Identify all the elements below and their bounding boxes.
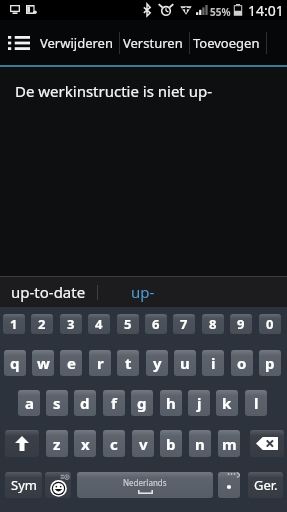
- staticText: x: [81, 434, 90, 454]
- staticText: z: [53, 434, 61, 454]
- button[interactable]: n: [189, 430, 211, 457]
- button[interactable]: u: [174, 350, 196, 376]
- staticText: 0: [266, 315, 274, 333]
- staticText: v: [139, 434, 148, 454]
- staticText: i: [211, 353, 216, 373]
- staticText: e: [67, 353, 76, 373]
- staticText: 1: [10, 315, 18, 333]
- button[interactable]: Backspace: [250, 430, 284, 457]
- button[interactable]: q: [4, 350, 26, 376]
- button[interactable]: 1: [3, 314, 25, 334]
- button[interactable]: c: [103, 430, 125, 457]
- staticText: b: [166, 434, 176, 454]
- staticText: 55%: [210, 5, 231, 19]
- staticText: 14:01: [248, 1, 284, 20]
- button[interactable]: 0: [259, 314, 281, 334]
- staticText: m: [222, 434, 237, 454]
- button[interactable]: d: [74, 390, 96, 416]
- button[interactable]: Versturen: [120, 20, 189, 65]
- button[interactable]: m: [218, 430, 240, 457]
- staticText: r: [97, 353, 104, 373]
- staticText: 9: [237, 315, 245, 333]
- button[interactable]: k: [216, 390, 238, 416]
- button[interactable]: h: [160, 390, 182, 416]
- staticText: c: [110, 434, 118, 454]
- button[interactable]: Space: [77, 472, 213, 498]
- staticText: w: [37, 353, 50, 373]
- button[interactable]: Emoji: [45, 472, 71, 498]
- staticText: Toevoegen: [193, 34, 260, 52]
- button[interactable]: 5: [117, 314, 139, 334]
- staticText: Verwijderen: [40, 34, 113, 52]
- staticText: 7: [180, 315, 188, 333]
- staticText: l: [254, 393, 259, 413]
- staticText: 5: [124, 315, 132, 333]
- staticText: up-: [131, 282, 155, 302]
- button[interactable]: o: [231, 350, 253, 376]
- button[interactable]: y: [146, 350, 168, 376]
- button[interactable]: x: [74, 430, 96, 457]
- button[interactable]: i: [202, 350, 224, 376]
- staticText: 6: [152, 315, 160, 333]
- button[interactable]: up-: [98, 277, 188, 307]
- button[interactable]: w: [32, 350, 54, 376]
- button[interactable]: 4: [88, 314, 110, 334]
- staticText: q: [10, 353, 20, 373]
- staticText: o: [237, 353, 247, 373]
- button[interactable]: j: [188, 390, 210, 416]
- button[interactable]: l: [245, 390, 267, 416]
- staticText: a: [25, 393, 34, 413]
- staticText: j: [197, 393, 202, 413]
- staticText: 3: [67, 315, 75, 333]
- staticText: f: [111, 393, 117, 413]
- button[interactable]: 8: [202, 314, 224, 334]
- staticText: y: [153, 353, 162, 373]
- button[interactable]: r: [89, 350, 111, 376]
- staticText: Sym: [11, 476, 37, 494]
- staticText: g: [137, 393, 147, 413]
- staticText: 8: [209, 315, 217, 333]
- button[interactable]: f: [103, 390, 125, 416]
- button[interactable]: [218, 472, 240, 498]
- button[interactable]: Ger.: [248, 472, 283, 498]
- button[interactable]: 3: [60, 314, 82, 334]
- staticText: De werkinstructie is niet up-: [15, 81, 213, 101]
- button[interactable]: v: [132, 430, 154, 457]
- staticText: h: [166, 393, 176, 413]
- staticText: k: [222, 393, 232, 413]
- staticText: up-to-date: [11, 282, 86, 302]
- button[interactable]: Shift: [5, 430, 39, 457]
- staticText: Versturen: [123, 34, 183, 52]
- button[interactable]: 7: [173, 314, 195, 334]
- button[interactable]: Toevoegen: [190, 20, 266, 65]
- button[interactable]: 6: [145, 314, 167, 334]
- staticText: s: [53, 393, 61, 413]
- staticText: t: [125, 353, 132, 373]
- staticText: p: [265, 353, 275, 373]
- button[interactable]: t: [117, 350, 139, 376]
- button[interactable]: e: [60, 350, 82, 376]
- staticText: u: [180, 353, 190, 373]
- staticText: Nederlands: [123, 477, 167, 488]
- staticText: n: [195, 434, 205, 454]
- button[interactable]: z: [46, 430, 68, 457]
- staticText: 2: [38, 315, 46, 333]
- button[interactable]: Menu: [0, 20, 37, 65]
- button[interactable]: a: [18, 390, 40, 416]
- button[interactable]: Sym: [5, 472, 42, 498]
- staticText: Ger.: [254, 476, 278, 494]
- staticText: d: [80, 393, 90, 413]
- button[interactable]: 9: [230, 314, 252, 334]
- button[interactable]: p: [259, 350, 281, 376]
- button[interactable]: b: [160, 430, 182, 457]
- button[interactable]: Verwijderen: [37, 20, 119, 65]
- button[interactable]: 2: [31, 314, 53, 334]
- button[interactable]: up-to-date: [0, 277, 97, 307]
- button[interactable]: g: [131, 390, 153, 416]
- button[interactable]: s: [46, 390, 68, 416]
- staticText: 4: [95, 315, 103, 333]
